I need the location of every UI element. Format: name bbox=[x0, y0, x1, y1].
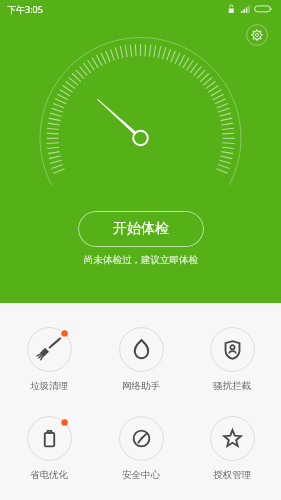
button[interactable]: 安全中心 bbox=[99, 410, 183, 483]
button[interactable]: Settings bbox=[246, 24, 268, 46]
staticText: 省电优化 bbox=[30, 469, 68, 481]
button[interactable]: 网络助手 bbox=[99, 321, 183, 394]
button[interactable]: 授权管理 bbox=[190, 410, 274, 483]
staticText: 垃圾清理 bbox=[30, 380, 68, 392]
staticText: 尚未体检过，建议立即体检 bbox=[84, 254, 198, 266]
button[interactable]: 垃圾清理 bbox=[7, 321, 91, 394]
staticText: 下午3:05 bbox=[7, 3, 43, 15]
button[interactable]: 省电优化 bbox=[7, 410, 91, 483]
staticText: 安全中心 bbox=[122, 469, 160, 481]
button[interactable]: 开始体检 bbox=[78, 211, 204, 247]
staticText: 网络助手 bbox=[122, 380, 160, 392]
staticText: 骚扰拦截 bbox=[213, 380, 251, 392]
staticText: 授权管理 bbox=[213, 469, 251, 481]
button[interactable]: 骚扰拦截 bbox=[190, 321, 274, 394]
staticText: 开始体检 bbox=[113, 220, 169, 238]
